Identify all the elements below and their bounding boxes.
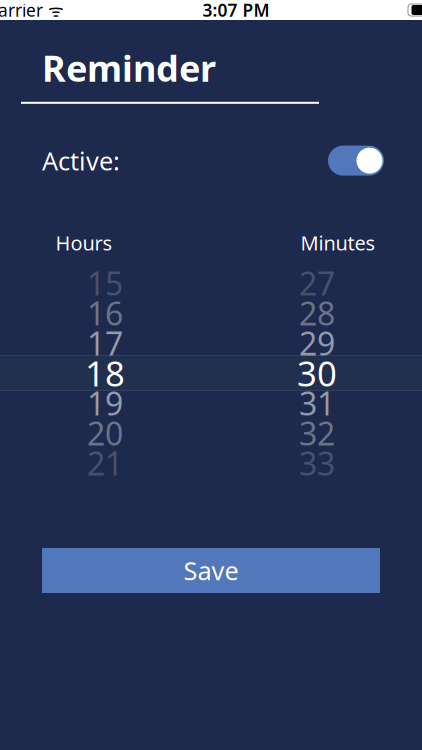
- staticText: 20: [87, 412, 123, 454]
- staticText: 31: [299, 382, 335, 424]
- staticText: 3:07 PM: [202, 0, 269, 21]
- staticText: 15: [87, 262, 123, 304]
- staticText: 18: [85, 350, 125, 396]
- staticText: Carrier ᯤ: [0, 0, 64, 21]
- staticText: 33: [299, 442, 335, 484]
- staticText: Reminder: [42, 44, 216, 92]
- staticText: 30: [297, 350, 337, 396]
- staticText: 21: [87, 442, 123, 484]
- staticText: 27: [299, 262, 335, 304]
- staticText: 17: [87, 322, 123, 364]
- staticText: Active:: [42, 144, 120, 177]
- staticText: Save: [183, 554, 238, 587]
- staticText: Hours: [55, 229, 112, 256]
- button[interactable]: Save: [42, 548, 380, 593]
- staticText: 19: [87, 382, 123, 424]
- staticText: Minutes: [300, 229, 375, 256]
- button[interactable]: Active: [328, 146, 384, 176]
- staticText: 28: [299, 292, 335, 334]
- staticText: 29: [299, 322, 335, 364]
- staticText: 16: [87, 292, 123, 334]
- staticText: 32: [299, 412, 335, 454]
